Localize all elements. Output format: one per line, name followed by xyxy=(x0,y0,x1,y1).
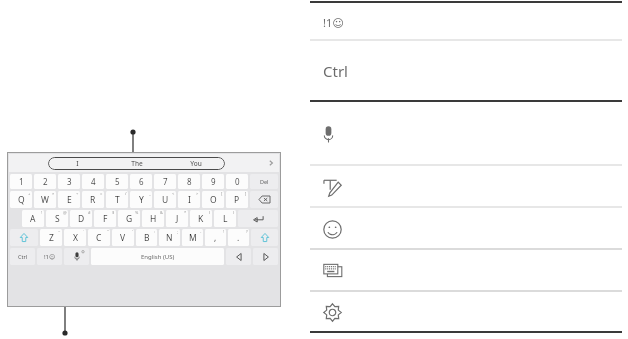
staticText: ! xyxy=(41,210,43,215)
button[interactable]: 8 xyxy=(178,174,200,189)
staticText: B xyxy=(144,232,150,244)
button[interactable]: Z xyxy=(40,229,62,246)
staticText: % xyxy=(135,210,139,215)
button[interactable]: X xyxy=(64,229,86,246)
button[interactable]: Emoji xyxy=(310,209,622,249)
button[interactable]: J xyxy=(166,210,188,227)
button[interactable]: 7 xyxy=(154,174,176,189)
staticText: I xyxy=(188,194,191,206)
button[interactable]: I xyxy=(48,157,225,170)
staticText: 3 xyxy=(67,176,72,187)
staticText: X xyxy=(73,232,78,244)
staticText: 1 xyxy=(19,176,24,187)
staticText: Del xyxy=(260,178,269,185)
staticText: + xyxy=(28,191,31,196)
button[interactable]: !1☺ xyxy=(310,4,622,40)
button[interactable]: Select keyboard xyxy=(310,251,622,291)
button[interactable]: 4 xyxy=(82,174,104,189)
button[interactable]: 1 xyxy=(10,174,32,189)
button[interactable]: Ctrl xyxy=(310,42,622,100)
button[interactable]: R xyxy=(82,191,104,208)
staticText: H xyxy=(150,213,157,225)
other: Select keyboard xyxy=(323,263,343,280)
button[interactable]: Move cursor left xyxy=(226,248,251,265)
staticText: [ xyxy=(221,191,223,196)
staticText: × xyxy=(52,191,55,196)
button[interactable]: Move cursor right xyxy=(253,248,278,265)
staticText: 0 xyxy=(235,176,240,187)
button[interactable]: You xyxy=(166,157,225,170)
staticText: Y xyxy=(139,194,144,206)
button[interactable]: D xyxy=(70,210,92,227)
button[interactable]: Ctrl xyxy=(10,248,35,265)
button[interactable]: N xyxy=(159,229,180,246)
button[interactable]: Handwriting xyxy=(310,167,622,207)
button[interactable]: Enter xyxy=(238,210,278,227)
button[interactable]: U xyxy=(154,191,176,208)
button[interactable]: W xyxy=(34,191,56,208)
button[interactable]: Settings xyxy=(310,293,622,332)
button[interactable]: V xyxy=(112,229,134,246)
button[interactable]: Del xyxy=(250,174,278,189)
button[interactable]: A xyxy=(22,210,44,227)
button[interactable]: M xyxy=(182,229,203,246)
button[interactable]: K xyxy=(190,210,212,227)
staticText: O xyxy=(210,194,217,206)
button[interactable]: 5 xyxy=(106,174,128,189)
button[interactable]: Shift xyxy=(10,229,38,246)
staticText: ÷ xyxy=(76,191,79,196)
button[interactable]: I xyxy=(178,191,200,208)
button[interactable]: 2 xyxy=(34,174,56,189)
staticText: ] xyxy=(245,191,247,196)
button[interactable]: F xyxy=(94,210,116,227)
button[interactable]: G xyxy=(118,210,140,227)
button[interactable]: More suggestions xyxy=(263,155,279,171)
button[interactable]: T xyxy=(106,191,128,208)
staticText: !1☺ xyxy=(44,253,56,261)
button[interactable]: Y xyxy=(130,191,152,208)
other: Emoji xyxy=(323,220,342,239)
button[interactable]: 9 xyxy=(202,174,224,189)
staticText: , xyxy=(214,232,217,244)
staticText: E xyxy=(67,194,72,206)
button[interactable]: H xyxy=(142,210,164,227)
staticText: ! xyxy=(223,229,225,234)
staticText: / xyxy=(125,191,127,196)
staticText: ; xyxy=(177,229,179,234)
staticText: T xyxy=(115,194,120,206)
other: Handwriting xyxy=(323,178,342,197)
button[interactable]: !1☺ xyxy=(37,248,62,265)
button[interactable]: C xyxy=(88,229,110,246)
button[interactable]: . xyxy=(228,229,249,246)
button[interactable]: S xyxy=(46,210,68,227)
staticText: You xyxy=(190,159,202,168)
staticText: & xyxy=(160,210,163,215)
staticText: : xyxy=(154,229,156,234)
staticText: W xyxy=(41,194,49,206)
other: Settings xyxy=(323,303,342,322)
button[interactable]: 3 xyxy=(58,174,80,189)
button[interactable]: E xyxy=(58,191,80,208)
button[interactable]: The xyxy=(107,157,166,170)
button[interactable]: Shift xyxy=(251,229,278,246)
button[interactable]: L xyxy=(214,210,236,227)
button[interactable]: P xyxy=(226,191,248,208)
staticText: . xyxy=(237,232,240,244)
staticText: K xyxy=(198,213,204,225)
button[interactable]: I xyxy=(48,157,107,170)
button[interactable]: Backspace xyxy=(250,191,278,208)
button[interactable]: , xyxy=(205,229,226,246)
button[interactable]: English (US) xyxy=(91,248,224,265)
button[interactable] xyxy=(310,103,622,165)
button[interactable]: O xyxy=(202,191,224,208)
other: Shift xyxy=(261,233,269,242)
staticText: N xyxy=(166,232,173,244)
staticText: Ctrl xyxy=(18,253,28,260)
staticText: 8 xyxy=(187,176,192,187)
button[interactable] xyxy=(64,248,89,265)
button[interactable]: 0 xyxy=(226,174,248,189)
button[interactable]: B xyxy=(136,229,157,246)
staticText: Ctrl xyxy=(323,61,348,81)
button[interactable]: Q xyxy=(10,191,32,208)
button[interactable]: 6 xyxy=(130,174,152,189)
